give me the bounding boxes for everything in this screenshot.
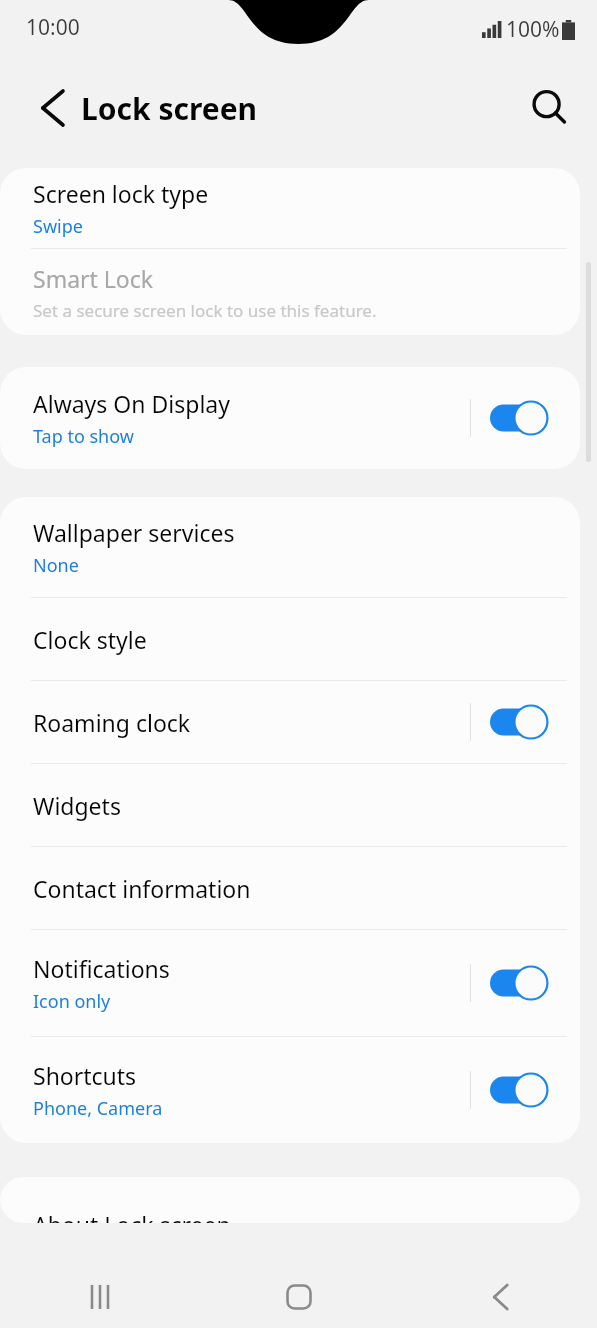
staticText: Wallpaper services	[33, 517, 235, 548]
staticText: Swipe	[33, 214, 83, 239]
button[interactable]: Roaming clock	[0, 681, 580, 763]
button[interactable]: Toggle	[490, 1072, 552, 1108]
staticText: About Lock screen	[33, 1209, 231, 1223]
staticText: Roaming clock	[33, 707, 191, 738]
button[interactable]: Contact information	[0, 847, 580, 929]
button[interactable]: Search	[525, 84, 573, 132]
staticText: 10:00	[26, 13, 80, 42]
button[interactable]: Back	[398, 1265, 597, 1328]
button[interactable]: Always On Display	[0, 367, 580, 469]
staticText: Lock screen	[81, 88, 258, 129]
button[interactable]: Widgets	[0, 764, 580, 846]
staticText: Tap to show	[33, 424, 134, 449]
staticText: Set a secure screen lock to use this fea…	[33, 299, 377, 322]
staticText: Screen lock type	[33, 178, 209, 209]
button[interactable]: Wallpaper services	[0, 497, 580, 597]
staticText: Contact information	[33, 873, 251, 904]
button[interactable]: Toggle	[490, 704, 552, 740]
button[interactable]: Shortcuts	[0, 1037, 580, 1143]
button[interactable]: Back	[22, 83, 72, 133]
staticText: Clock style	[33, 624, 147, 655]
staticText: None	[33, 553, 79, 578]
button[interactable]: Home	[199, 1265, 398, 1328]
staticText: Phone, Camera	[33, 1096, 163, 1121]
staticText: Shortcuts	[33, 1060, 137, 1091]
button[interactable]: Smart Lock	[0, 249, 580, 335]
staticText: 100%	[506, 15, 560, 44]
button[interactable]: Screen lock type	[0, 168, 580, 248]
button[interactable]: Notifications	[0, 930, 580, 1036]
button[interactable]: Toggle	[490, 400, 552, 436]
staticText: Icon only	[33, 989, 111, 1014]
button[interactable]: Clock style	[0, 598, 580, 680]
button[interactable]: About Lock screen	[0, 1177, 580, 1223]
button[interactable]: Recents	[0, 1265, 199, 1328]
staticText: Notifications	[33, 953, 170, 984]
staticText: Widgets	[33, 790, 121, 821]
staticText: Smart Lock	[33, 263, 154, 294]
staticText: Always On Display	[33, 388, 230, 419]
button[interactable]: Toggle	[490, 965, 552, 1001]
